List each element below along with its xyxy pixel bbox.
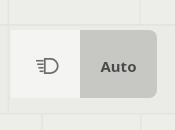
button[interactable]: Auto — [80, 30, 157, 98]
staticText: Auto — [100, 56, 137, 76]
button[interactable]: Low beam headlights — [11, 30, 80, 98]
